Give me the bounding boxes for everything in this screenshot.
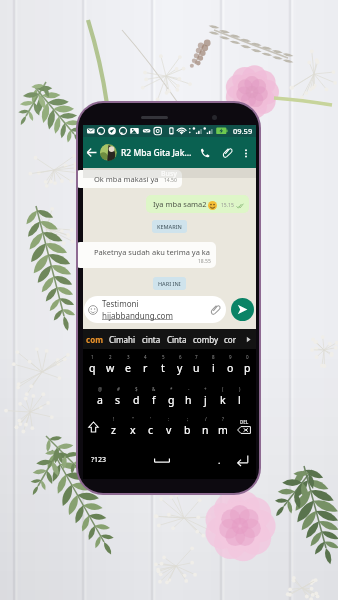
- button[interactable]: 6: [171, 349, 188, 380]
- staticText: cinta: [142, 334, 161, 345]
- staticText: DEL: [240, 419, 249, 425]
- button[interactable]: 7: [188, 349, 205, 380]
- button[interactable]: 5: [154, 349, 171, 380]
- staticText: $: [135, 386, 138, 392]
- staticText: Busy: [161, 169, 178, 179]
- staticText: u: [193, 361, 200, 375]
- button[interactable]: /: [196, 412, 214, 441]
- button[interactable]: :: [160, 412, 178, 441]
- staticText: 6: [179, 354, 182, 360]
- button[interactable]: 4: [137, 349, 154, 380]
- button[interactable]: com: [85, 334, 104, 345]
- staticText: d: [133, 393, 140, 407]
- button[interactable]: -: [180, 380, 197, 412]
- staticText: 8: [212, 354, 215, 360]
- staticText: &: [152, 386, 156, 392]
- staticText: Cinta: [167, 334, 187, 345]
- button[interactable]: 3: [119, 349, 137, 380]
- button[interactable]: ;: [178, 412, 196, 441]
- button[interactable]: cor: [223, 334, 237, 345]
- staticText: x: [130, 423, 136, 437]
- staticText: ): [239, 386, 241, 392]
- button[interactable]: Enter: [229, 441, 256, 479]
- staticText: com: [86, 334, 103, 345]
- staticText: (: [222, 386, 224, 392]
- button[interactable]: &: [145, 380, 163, 412]
- button[interactable]: !: [104, 412, 123, 441]
- button[interactable]: Ok mba makasi ya: [78, 170, 182, 188]
- button[interactable]: Cinta: [166, 334, 188, 345]
- staticText: ': [150, 416, 152, 422]
- staticText: y: [177, 361, 183, 375]
- staticText: #: [117, 386, 120, 392]
- button[interactable]: 1: [83, 349, 101, 380]
- staticText: m: [218, 423, 228, 437]
- button[interactable]: Voice call: [196, 144, 213, 161]
- staticText: ?: [222, 416, 224, 422]
- button[interactable]: cinta: [141, 334, 162, 345]
- staticText: q: [89, 361, 96, 375]
- button[interactable]: ?123: [83, 441, 114, 479]
- staticText: l: [238, 393, 241, 407]
- staticText: 18.55: [198, 258, 211, 265]
- staticText: Cimahi: [109, 334, 136, 345]
- button[interactable]: Send: [231, 298, 254, 321]
- staticText: t: [161, 361, 165, 375]
- button[interactable]: comby: [192, 334, 219, 345]
- button[interactable]: (: [214, 380, 231, 412]
- button[interactable]: 8: [205, 349, 222, 380]
- button[interactable]: ): [231, 380, 248, 412]
- button[interactable]: Profile photo: [100, 144, 117, 161]
- staticText: -: [188, 386, 190, 392]
- staticText: Iya mba sama2: [153, 199, 207, 209]
- staticText: R2 Mba Gita Jak…: [121, 147, 192, 159]
- button[interactable]: ': [142, 412, 160, 441]
- staticText: s: [115, 393, 121, 407]
- button[interactable]: Attach: [219, 144, 236, 161]
- button[interactable]: Space: [114, 441, 209, 479]
- button[interactable]: Back: [84, 145, 99, 160]
- staticText: :: [168, 416, 170, 422]
- staticText: c: [148, 423, 154, 437]
- staticText: comby: [193, 334, 218, 345]
- button[interactable]: $: [127, 380, 145, 412]
- staticText: *: [170, 386, 173, 392]
- button[interactable]: Delete: [232, 412, 256, 441]
- button[interactable]: .: [209, 441, 229, 479]
- button[interactable]: ": [123, 412, 142, 441]
- staticText: w: [106, 361, 115, 375]
- button[interactable]: @: [91, 380, 109, 412]
- staticText: k: [220, 393, 226, 407]
- staticText: 2: [109, 354, 112, 360]
- staticText: ;: [187, 416, 189, 422]
- button[interactable]: Iya mba sama2: [146, 195, 249, 213]
- staticText: 3: [127, 354, 130, 360]
- staticText: z: [111, 423, 116, 437]
- button[interactable]: More suggestions: [242, 333, 254, 345]
- staticText: e: [125, 361, 131, 375]
- staticText: /: [205, 416, 207, 422]
- button[interactable]: More options: [239, 146, 253, 160]
- button[interactable]: HARI INI: [153, 277, 186, 290]
- button[interactable]: *: [163, 380, 180, 412]
- staticText: 09.59: [233, 126, 253, 136]
- button[interactable]: +: [197, 380, 214, 412]
- button[interactable]: #: [109, 380, 127, 412]
- staticText: ?123: [91, 455, 107, 465]
- staticText: 1: [91, 354, 94, 360]
- button[interactable]: Shift: [83, 412, 104, 441]
- staticText: 14.50: [164, 177, 177, 184]
- staticText: 9: [229, 354, 232, 360]
- button[interactable]: Cimahi: [108, 334, 137, 345]
- button[interactable]: Testimoni: [84, 296, 226, 323]
- button[interactable]: 2: [101, 349, 119, 380]
- staticText: hijabbandung.com: [102, 310, 173, 321]
- button[interactable]: Paketnya sudah aku terima ya ka: [78, 242, 216, 268]
- button[interactable]: 0: [239, 349, 256, 380]
- staticText: v: [166, 423, 172, 437]
- button[interactable]: KEMARIN: [152, 220, 187, 233]
- button[interactable]: ?: [214, 412, 232, 441]
- staticText: h: [185, 393, 192, 407]
- button[interactable]: 9: [222, 349, 239, 380]
- button[interactable]: Back: [83, 137, 256, 168]
